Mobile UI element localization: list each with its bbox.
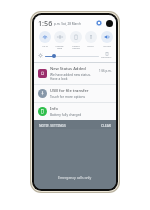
staticText: NOTIF. SETTINGS <box>39 123 66 127</box>
staticText: Touch for more options <box>50 95 86 99</box>
button[interactable]: New Status Added <box>34 63 116 84</box>
button[interactable]: Brightness <box>45 53 99 59</box>
staticText: We have added new status. Have a look <box>50 73 99 81</box>
staticText: Sound <box>103 44 111 47</box>
staticText: USB for file transfer <box>50 88 89 94</box>
staticText: New Status Added <box>50 66 86 72</box>
staticText: Emergency calls only <box>58 175 92 180</box>
button[interactable]: Settings <box>95 19 103 27</box>
button[interactable]: NOTIF. SETTINGS <box>38 121 67 129</box>
staticText: 1:56 <box>38 18 53 28</box>
staticText: 1:56 p.m. <box>99 69 112 73</box>
staticText: p.m. Sat, 28 March <box>54 22 81 26</box>
staticText: Torch <box>87 44 94 47</box>
button[interactable]: CLEAR <box>100 121 112 129</box>
staticText: Mobile data <box>55 44 64 50</box>
button[interactable]: Outdoors mode <box>101 52 112 59</box>
staticText: CLEAR <box>101 123 111 127</box>
staticText: Power saving <box>72 44 80 50</box>
button[interactable]: USB for file transfer <box>34 85 116 102</box>
button[interactable]: Wi-Fi <box>37 31 52 47</box>
staticText: Info <box>50 106 58 112</box>
button[interactable]: Sound <box>99 31 114 47</box>
staticText: Outdoors <box>101 56 112 59</box>
button[interactable]: Torch <box>83 31 98 47</box>
staticText: Battery fully charged <box>50 113 82 117</box>
button[interactable]: Info <box>34 103 116 120</box>
staticText: Wi-Fi <box>42 44 48 47</box>
button[interactable]: Power saving <box>68 31 83 50</box>
button[interactable]: Mobile data <box>52 31 67 50</box>
